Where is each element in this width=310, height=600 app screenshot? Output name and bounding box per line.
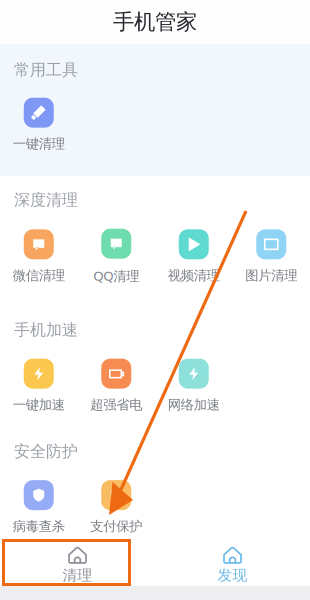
- button[interactable]: 视频清理: [155, 229, 232, 284]
- staticText: 常用工具: [14, 60, 78, 80]
- staticText: 手机管家: [113, 9, 197, 35]
- staticText: 支付保护: [90, 518, 142, 534]
- staticText: 图片清理: [245, 267, 297, 284]
- button[interactable]: 超强省电: [77, 359, 155, 413]
- staticText: QQ清理: [93, 267, 139, 284]
- staticText: 超强省电: [90, 397, 142, 413]
- staticText: 微信清理: [13, 267, 65, 284]
- staticText: 安全防护: [14, 441, 78, 461]
- staticText: 网络加速: [168, 397, 220, 413]
- button[interactable]: 微信清理: [0, 229, 77, 284]
- staticText: 发现: [217, 566, 247, 584]
- button[interactable]: 网络加速: [155, 359, 232, 413]
- staticText: 深度清理: [14, 190, 78, 210]
- button[interactable]: 支付保护: [77, 480, 155, 534]
- button[interactable]: 一键清理: [0, 98, 77, 152]
- staticText: 清理: [62, 566, 92, 584]
- button[interactable]: 图片清理: [232, 229, 310, 284]
- staticText: 一键加速: [13, 397, 65, 413]
- staticText: 病毒查杀: [13, 518, 65, 534]
- button[interactable]: 清理: [0, 536, 155, 586]
- staticText: 视频清理: [168, 267, 220, 284]
- staticText: 一键清理: [13, 136, 65, 152]
- button[interactable]: 一键加速: [0, 359, 77, 413]
- staticText: 手机加速: [14, 320, 78, 340]
- button[interactable]: QQ清理: [77, 229, 155, 284]
- button[interactable]: 病毒查杀: [0, 480, 77, 534]
- button[interactable]: 发现: [155, 536, 310, 586]
